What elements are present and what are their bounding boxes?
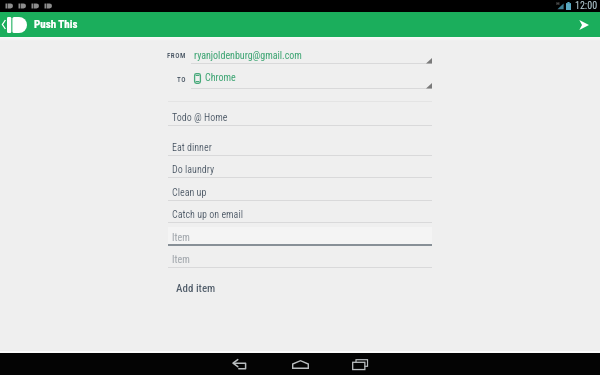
staticText: Eat dinner: [172, 142, 212, 154]
staticText: TO: [177, 76, 186, 84]
staticText: Clean up: [172, 187, 207, 199]
staticText: Catch up on email: [172, 209, 243, 221]
button[interactable]: Todo @ Home: [168, 107, 432, 126]
button[interactable]: Chrome: [191, 73, 432, 89]
staticText: Todo @ Home: [172, 112, 228, 124]
staticText: Push This: [34, 18, 78, 31]
button[interactable]: Back: [220, 353, 260, 375]
button[interactable]: Eat dinner: [168, 137, 432, 156]
button[interactable]: Clean up: [168, 182, 432, 201]
button[interactable]: Catch up on email: [168, 204, 432, 223]
staticText: Do laundry: [172, 164, 215, 176]
staticText: Item: [172, 232, 190, 244]
button[interactable]: Navigate up: [0, 12, 8, 37]
staticText: 12:00: [575, 0, 598, 12]
button[interactable]: Send: [572, 13, 596, 37]
staticText: ryanjoldenburg@gmail.com: [194, 50, 302, 62]
staticText: Add item: [176, 282, 216, 295]
button[interactable]: Do laundry: [168, 159, 432, 178]
staticText: Chrome: [205, 72, 236, 84]
staticText: FROM: [167, 52, 186, 60]
button[interactable]: Item: [168, 227, 432, 246]
button[interactable]: Home: [280, 353, 320, 375]
button[interactable]: ryanjoldenburg@gmail.com: [191, 48, 432, 64]
staticText: Item: [172, 254, 190, 266]
button[interactable]: Recent apps: [340, 353, 380, 375]
button[interactable]: Item: [168, 249, 432, 268]
button[interactable]: Add item: [172, 279, 220, 298]
